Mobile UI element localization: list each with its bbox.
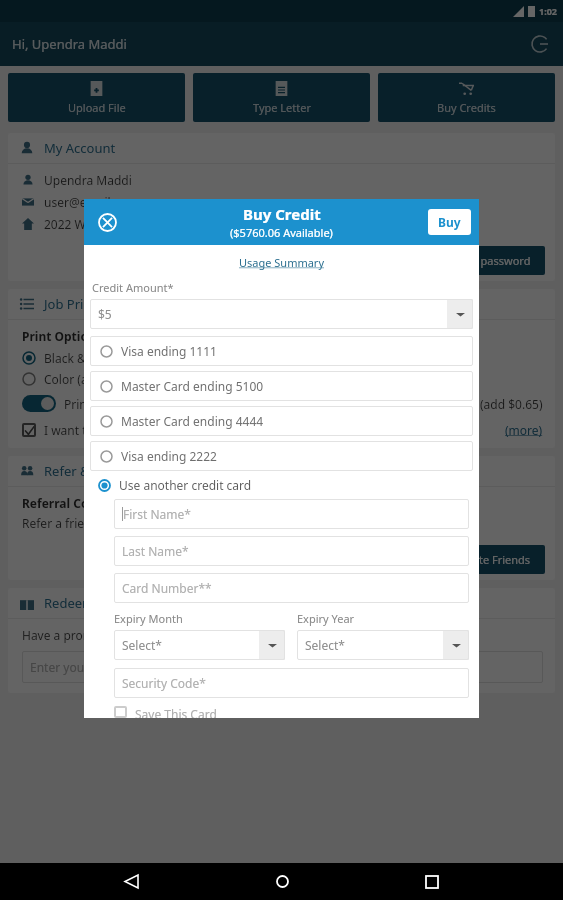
staticText: My Account — [44, 139, 116, 157]
staticText: (add $0.65) — [480, 396, 543, 412]
button[interactable]: Visa ending 1111 — [90, 336, 473, 366]
staticText: (more) — [505, 422, 543, 438]
staticText: Visa ending 1111 — [121, 343, 217, 359]
button[interactable]: Select* — [297, 630, 469, 660]
button[interactable]: Black & White — [22, 350, 122, 366]
staticText: Save This Card — [135, 706, 217, 718]
button[interactable]: Usage Summary — [90, 255, 473, 270]
staticText: Referral Code: ABCD1234 — [22, 495, 170, 511]
button[interactable]: Invite Friends — [446, 545, 545, 574]
staticText: Hi, Upendra Maddi — [12, 35, 127, 53]
staticText: Last Name* — [122, 543, 189, 559]
button[interactable]: Back — [111, 863, 151, 900]
staticText: Card Number** — [122, 580, 212, 596]
staticText: Expiry Year — [297, 611, 355, 626]
button[interactable]: Home — [262, 863, 302, 900]
staticText: Invite Friends — [460, 552, 531, 567]
button[interactable]: First Name* — [114, 499, 469, 529]
staticText: 1:02 — [539, 5, 557, 17]
staticText: Job Print Settings — [44, 295, 149, 313]
staticText: Buy Credits — [437, 100, 496, 115]
staticText: Expiry Month — [114, 611, 183, 626]
staticText: Upendra Maddi — [44, 172, 132, 188]
staticText: Select* — [305, 637, 443, 653]
button[interactable]: Close — [92, 207, 122, 237]
staticText: Enter your code — [30, 659, 120, 675]
staticText: I want to receive notifications — [44, 422, 505, 438]
staticText: Print on both sides — [64, 396, 480, 412]
staticText: Buy Credit — [243, 204, 321, 224]
button[interactable]: Select* — [114, 630, 285, 660]
button[interactable]: Recent apps — [412, 863, 452, 900]
staticText: Change password — [438, 253, 531, 268]
button[interactable]: Type Letter — [193, 73, 370, 122]
staticText: 2022 Washington Ave — [44, 216, 166, 232]
button[interactable]: Upload File — [8, 73, 185, 122]
staticText: Color (additional $0.10/page) — [44, 371, 208, 387]
staticText: Use another credit card — [119, 477, 252, 493]
button[interactable]: Card Number** — [114, 573, 469, 603]
staticText: Buy — [438, 214, 461, 230]
staticText: Security Code* — [122, 675, 206, 691]
staticText: Credit Amount* — [92, 280, 174, 295]
button[interactable]: Master Card ending 5100 — [90, 371, 473, 401]
staticText: Refer a friend and earn credits — [22, 515, 194, 531]
button[interactable]: Security Code* — [114, 668, 469, 698]
staticText: Have a promo code? — [22, 627, 137, 643]
staticText: Print Options — [22, 328, 102, 344]
staticText: Black & White — [44, 350, 122, 366]
staticText: First Name* — [123, 506, 191, 522]
staticText: Upload File — [68, 100, 126, 115]
staticText: Master Card ending 4444 — [121, 413, 264, 429]
staticText: Visa ending 2222 — [121, 448, 217, 464]
button[interactable]: Last Name* — [114, 536, 469, 566]
button[interactable]: Visa ending 2222 — [90, 441, 473, 471]
button[interactable]: Print on both sides — [22, 395, 543, 412]
button[interactable]: Save This Card — [114, 706, 217, 718]
button[interactable]: Enter your code — [22, 651, 543, 683]
staticText: Redeem Code — [44, 594, 130, 612]
staticText: user@email.com — [44, 194, 139, 210]
staticText: $5 — [98, 306, 447, 322]
button[interactable]: Buy Credits — [378, 73, 555, 122]
button[interactable]: Master Card ending 4444 — [90, 406, 473, 436]
staticText: ($5760.06 Available) — [230, 225, 333, 240]
staticText: Master Card ending 5100 — [121, 378, 264, 394]
button[interactable]: Logout — [527, 31, 553, 57]
button[interactable]: $5 — [90, 299, 473, 329]
button[interactable]: I want to receive notifications — [22, 422, 543, 438]
button[interactable]: Change password — [424, 246, 545, 275]
button[interactable]: Use another credit card — [98, 477, 473, 493]
staticText: Select* — [122, 637, 259, 653]
button[interactable]: Color (additional $0.10/page) — [22, 371, 208, 387]
staticText: Type Letter — [253, 100, 311, 115]
button[interactable]: Buy — [428, 209, 471, 235]
staticText: Refer & Earn — [44, 462, 121, 480]
